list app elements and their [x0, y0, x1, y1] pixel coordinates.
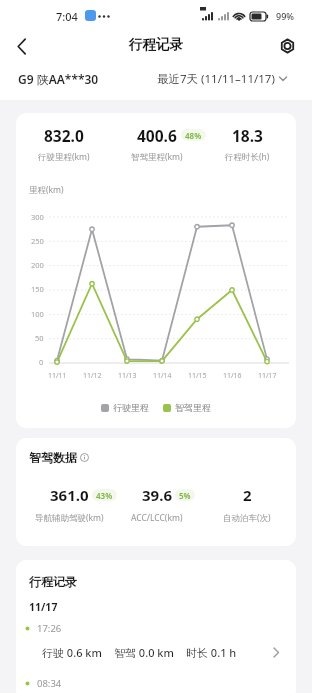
staticText: 17:26 [37, 622, 62, 635]
staticText: 导航辅助驾驶(km) [35, 512, 104, 524]
staticText: 11/17 [29, 600, 58, 614]
staticText: 行程记录 [29, 574, 77, 589]
staticText: 里程(km) [29, 184, 64, 196]
staticText: 自动泊车(次) [223, 512, 271, 524]
staticText: 时长 0.1 h [186, 645, 237, 660]
staticText: 智驾 0.0 km [114, 645, 174, 660]
button[interactable] [280, 38, 296, 54]
staticText: 行驶 0.6 km [42, 645, 102, 660]
staticText: 2 [243, 485, 252, 505]
button[interactable]: 行驶 0.6 km [42, 644, 237, 660]
staticText: 0 [39, 357, 44, 367]
staticText: 43% [96, 490, 113, 501]
staticText: 832.0 [44, 125, 84, 145]
staticText: G9 陕AA***30 [18, 71, 99, 87]
staticText: 300 [31, 212, 44, 222]
staticText: 11/12 [83, 371, 102, 381]
button[interactable] [17, 38, 27, 55]
staticText: 50 [35, 333, 44, 343]
staticText: 200 [31, 260, 44, 270]
button[interactable]: 最近7天 (11/11–11/17) [157, 71, 287, 87]
staticText: ACC/LCC(km) [131, 512, 183, 524]
staticText: 智驾里程 [175, 402, 211, 413]
staticText: 智驾数据 [29, 450, 77, 465]
staticText: 18.3 [232, 125, 263, 145]
staticText: 11/11 [48, 371, 67, 381]
staticText: 361.0 [50, 485, 89, 505]
staticText: 7:04 [56, 9, 78, 24]
staticText: 100 [31, 309, 44, 319]
staticText: 11/16 [223, 371, 242, 381]
staticText: 5% [179, 490, 191, 501]
staticText: 智驾里程(km) [131, 151, 183, 163]
staticText: 11/17 [258, 371, 277, 381]
staticText: 48% [185, 130, 202, 141]
staticText: 行驶里程(km) [38, 151, 90, 163]
staticText: 400.6 [137, 125, 177, 145]
staticText: 150 [31, 284, 44, 294]
staticText: 39.6 [142, 485, 172, 505]
staticText: 行驶里程 [113, 402, 149, 413]
staticText: 11/14 [153, 371, 172, 381]
staticText: 行程记录 [129, 36, 183, 53]
staticText: 250 [31, 236, 44, 246]
staticText: 行程时长(h) [225, 151, 270, 163]
staticText: 99% [276, 10, 294, 22]
staticText: 最近7天 (11/11–11/17) [157, 71, 275, 87]
staticText: 08:34 [37, 677, 62, 690]
staticText: 11/13 [118, 371, 137, 381]
staticText: 11/15 [188, 371, 207, 381]
